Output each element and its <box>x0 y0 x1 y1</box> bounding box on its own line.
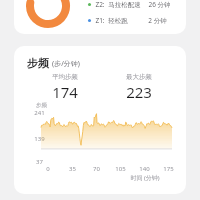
button[interactable]: 步频 <box>14 46 186 194</box>
staticText: 223 <box>126 82 152 102</box>
staticText: Z1: <box>95 16 105 25</box>
button[interactable]: Training zone ring <box>14 0 186 34</box>
staticText: 平均步频 <box>52 73 78 81</box>
staticText: 241 <box>34 109 45 117</box>
staticText: 37 <box>36 158 43 166</box>
staticText: 2 分钟 <box>148 16 167 25</box>
staticText: 步频 <box>27 56 49 70</box>
staticText: 174 <box>52 82 78 102</box>
staticText: 140 <box>139 165 150 173</box>
staticText: 时间 (分钟) <box>130 174 160 182</box>
staticText: 马拉松配速 <box>108 1 141 9</box>
other: Training zone ring <box>26 0 70 28</box>
staticText: 175 <box>163 165 174 173</box>
staticText: 70 <box>93 165 100 173</box>
staticText: (步/分钟) <box>52 59 80 69</box>
staticText: 105 <box>115 165 126 173</box>
staticText: 轻松跑 <box>108 17 128 25</box>
staticText: Z2: <box>95 0 105 9</box>
staticText: 35 <box>69 165 76 173</box>
staticText: 最大步频 <box>126 73 152 81</box>
staticText: 26 分钟 <box>148 0 171 9</box>
staticText: 0 <box>46 165 50 173</box>
staticText: 139 <box>34 135 45 143</box>
staticText: 步频 <box>36 102 47 109</box>
